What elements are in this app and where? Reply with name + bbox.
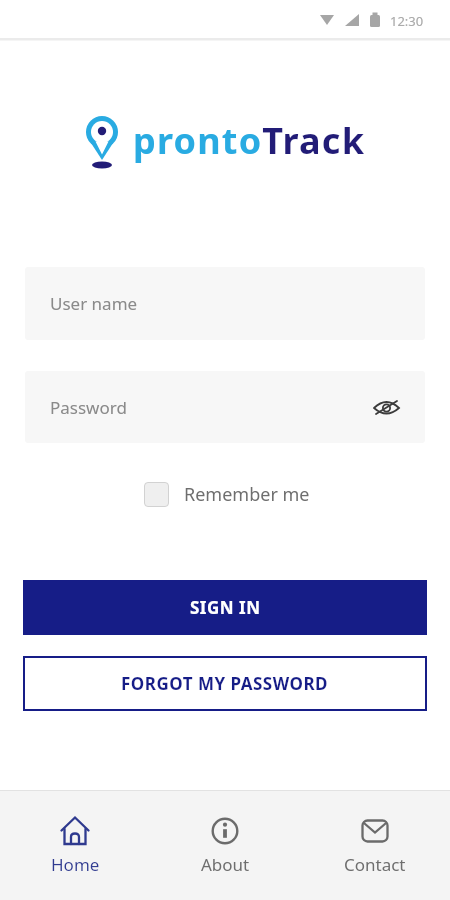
staticText: Password (50, 396, 127, 419)
button[interactable]: Password (25, 371, 425, 443)
button[interactable]: User name (25, 267, 425, 340)
button[interactable]: Home (0, 791, 150, 900)
button[interactable]: Remember me (144, 482, 310, 507)
button[interactable]: SIGN IN (23, 580, 427, 635)
staticText: Home (51, 853, 100, 876)
staticText: prontoTrack (133, 116, 366, 165)
button[interactable]: FORGOT MY PASSWORD (23, 656, 427, 711)
staticText: SIGN IN (190, 596, 261, 619)
staticText: Remember me (184, 482, 310, 507)
staticText: FORGOT MY PASSWORD (121, 672, 329, 695)
button[interactable]: Contact (300, 791, 450, 900)
staticText: 12:30 (390, 12, 424, 30)
staticText: User name (50, 292, 138, 315)
button[interactable]: About (150, 791, 300, 900)
staticText: Contact (344, 853, 406, 876)
staticText: About (201, 853, 250, 876)
